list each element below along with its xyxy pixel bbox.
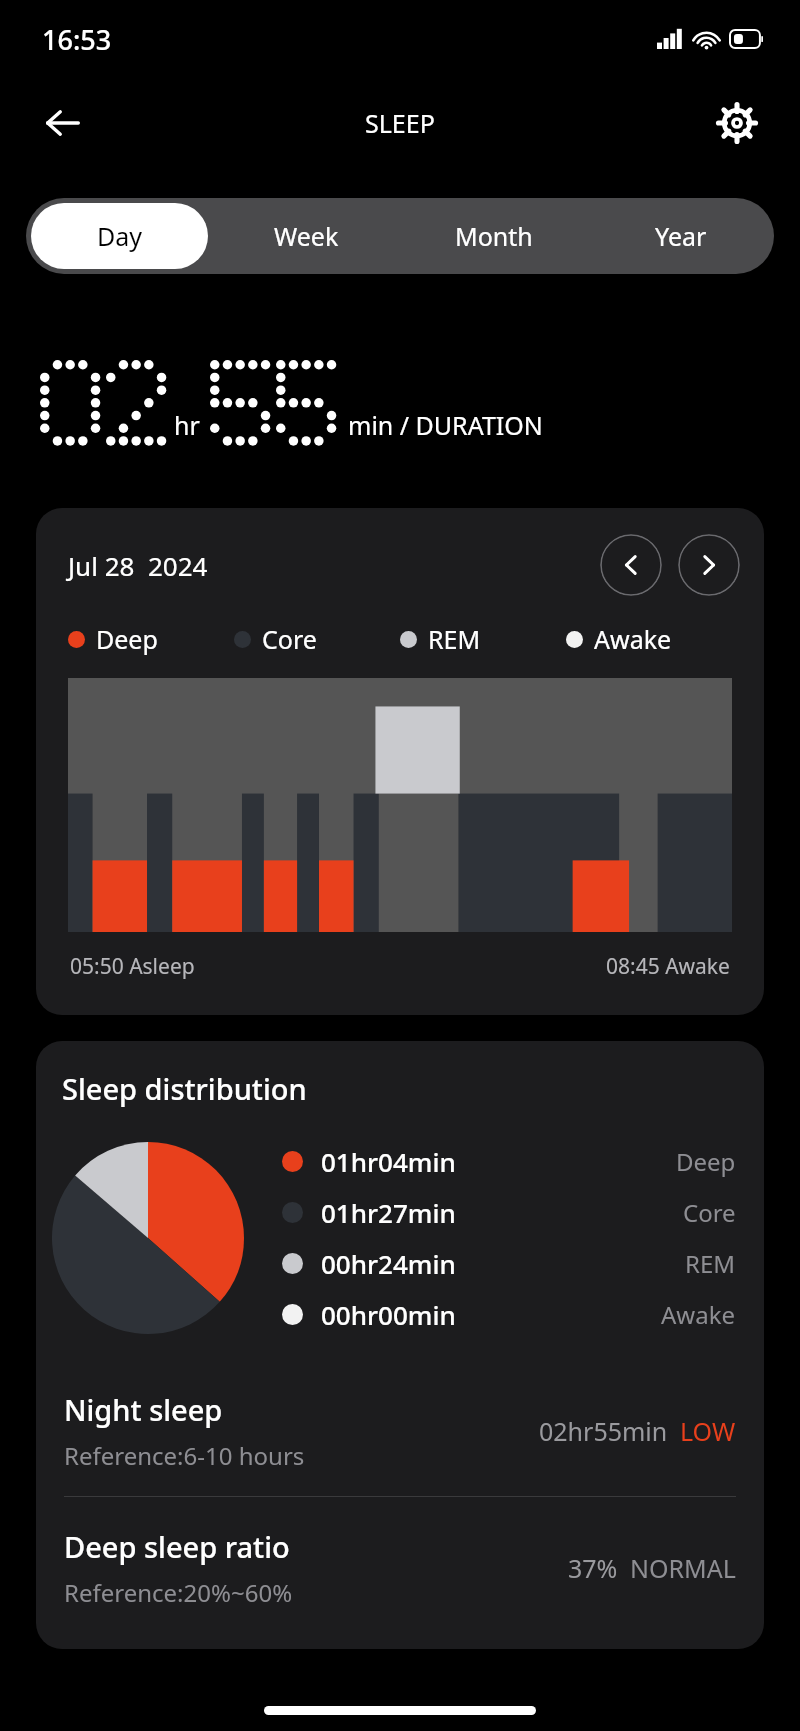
button[interactable]: Day — [31, 203, 208, 269]
button[interactable]: Month — [400, 198, 587, 274]
staticText: 00hr00min — [321, 1297, 456, 1332]
button[interactable]: Next day — [678, 534, 740, 596]
staticText: 02hr55min — [539, 1414, 668, 1448]
staticText: Month — [455, 219, 533, 253]
staticText: Core — [683, 1196, 736, 1229]
staticText: Awake — [661, 1298, 736, 1331]
staticText: Deep — [676, 1145, 736, 1178]
staticText: min / DURATION — [348, 408, 543, 442]
button[interactable]: Deep sleep ratio — [64, 1527, 736, 1609]
staticText: Awake — [594, 622, 672, 656]
button[interactable]: Year — [587, 198, 774, 274]
staticText: Night sleep — [64, 1390, 223, 1429]
staticText: Week — [274, 219, 339, 253]
staticText: REM — [428, 622, 481, 656]
staticText: 00hr24min — [321, 1246, 456, 1281]
staticText: SLEEP — [365, 106, 435, 140]
staticText: Reference:6-10 hours — [64, 1439, 305, 1472]
staticText: Year — [655, 219, 707, 253]
staticText: Deep — [96, 622, 158, 656]
staticText: 01hr27min — [321, 1195, 456, 1230]
staticText: 05:50 Asleep — [70, 952, 195, 981]
staticText: LOW — [680, 1414, 736, 1448]
staticText: REM — [685, 1247, 736, 1280]
staticText: NORMAL — [630, 1551, 736, 1585]
staticText: 16:53 — [42, 21, 112, 58]
button[interactable]: Back — [30, 90, 96, 156]
button[interactable]: Previous day — [600, 534, 662, 596]
staticText: Deep sleep ratio — [64, 1527, 290, 1566]
staticText: Jul 28 2024 — [68, 548, 208, 583]
staticText: hr — [174, 408, 200, 442]
staticText: Core — [262, 622, 317, 656]
staticText: Reference:20%~60% — [64, 1576, 293, 1609]
staticText: 01hr04min — [321, 1144, 456, 1179]
staticText: Day — [97, 219, 143, 253]
button[interactable]: Night sleep — [64, 1390, 736, 1472]
button[interactable]: Settings — [704, 90, 770, 156]
button[interactable]: Week — [213, 198, 400, 274]
staticText: Sleep distribution — [62, 1069, 307, 1108]
staticText: 37% — [568, 1551, 618, 1585]
staticText: 08:45 Awake — [606, 952, 730, 981]
